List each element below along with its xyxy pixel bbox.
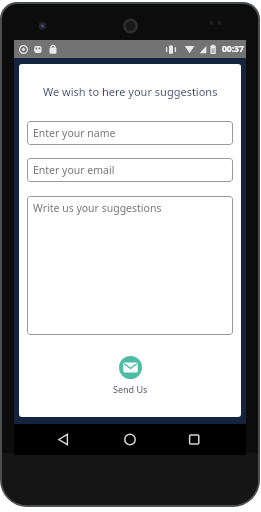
staticText: Enter your email xyxy=(33,163,115,177)
button[interactable] xyxy=(167,424,221,455)
button[interactable]: Send Us xyxy=(104,353,156,397)
staticText: Enter your name xyxy=(33,126,116,140)
staticText: Write us your suggestions xyxy=(33,201,162,215)
button[interactable] xyxy=(48,424,102,455)
button[interactable]: Enter your email xyxy=(27,158,233,182)
button[interactable] xyxy=(103,424,157,455)
button[interactable]: Write us your suggestions xyxy=(27,196,233,335)
button[interactable]: Enter your name xyxy=(27,121,233,145)
staticText: We wish to here your suggestions xyxy=(43,84,218,99)
staticText: 00:37 xyxy=(222,43,244,55)
staticText: Send Us xyxy=(113,383,148,395)
